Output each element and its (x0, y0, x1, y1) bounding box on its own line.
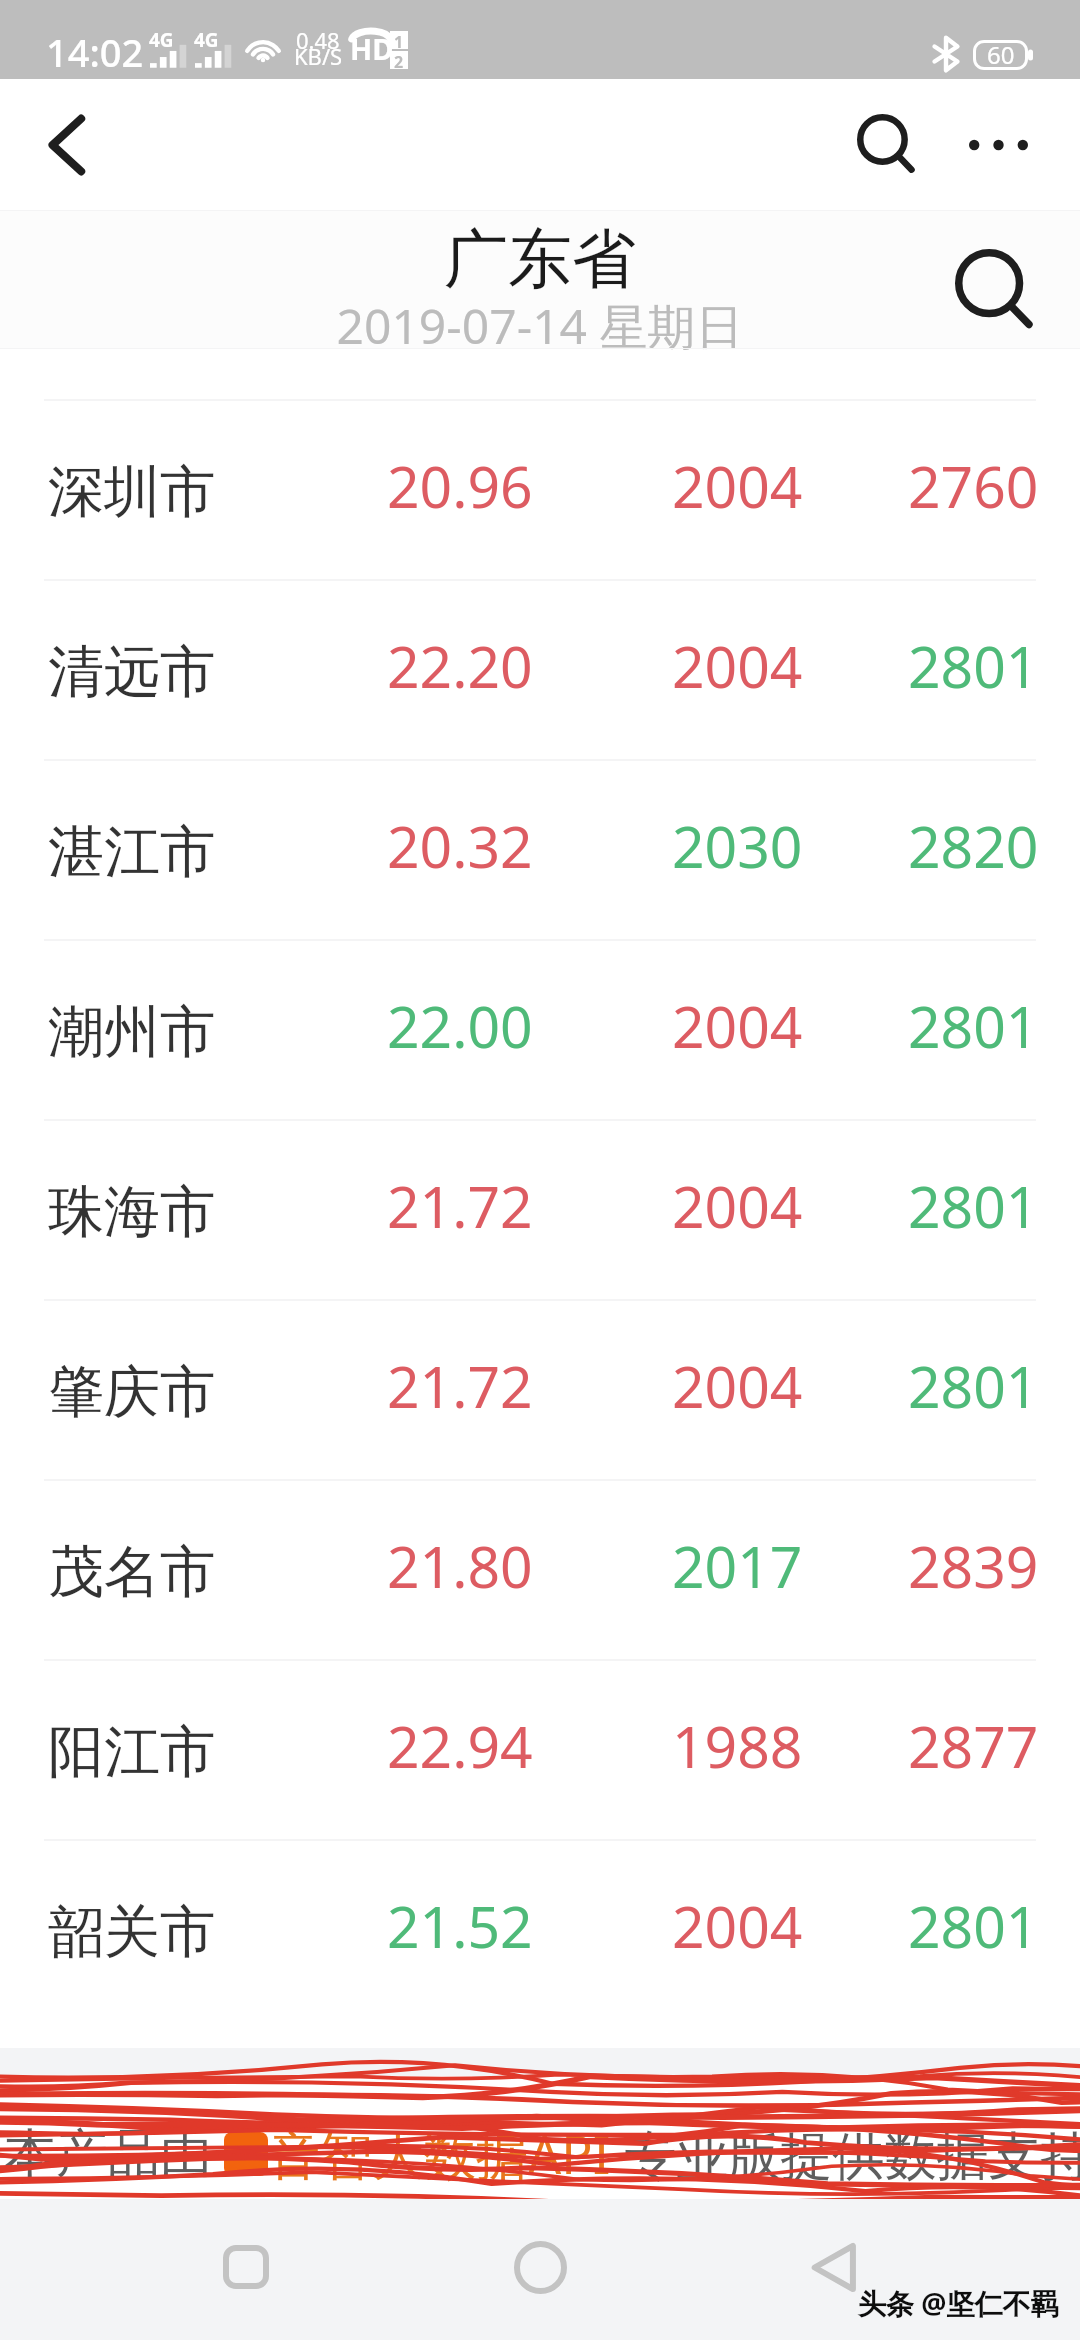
button[interactable]: 潮州市 (0, 939, 1080, 1119)
button[interactable]: 阳江市 (0, 1659, 1080, 1839)
staticText: 珠海市 (48, 1177, 216, 1248)
button[interactable]: 茂名市 (0, 1479, 1080, 1659)
staticText: 2877 (908, 1707, 1039, 1785)
staticText: 1988 (672, 1707, 803, 1785)
staticText: 2801 (908, 1167, 1039, 1245)
staticText: 14:02 (46, 26, 144, 78)
staticText: 韶关市 (48, 1897, 216, 1968)
staticText: 2839 (908, 1527, 1039, 1605)
button[interactable]: 韶关市 (0, 1839, 1080, 2019)
button[interactable]: Search (837, 94, 935, 192)
staticText: 头条 @坚仁不羁 (858, 2284, 1059, 2322)
staticText: 21.52 (387, 1887, 533, 1965)
staticText: 2820 (908, 807, 1039, 885)
staticText: 1 (394, 31, 404, 49)
staticText: 清远市 (48, 637, 216, 708)
staticText: 60 (987, 38, 1015, 71)
staticText: 2004 (672, 447, 803, 525)
staticText: 茂名市 (48, 1537, 216, 1608)
staticText: 21.80 (387, 1527, 533, 1605)
staticText: 4G (194, 27, 219, 53)
staticText: 2760 (908, 447, 1039, 525)
button[interactable]: 清远市 (0, 579, 1080, 759)
staticText: 0.48 (296, 25, 340, 55)
button[interactable]: 湛江市 (0, 759, 1080, 939)
staticText: 阳江市 (48, 1717, 216, 1788)
button[interactable]: More options (948, 95, 1048, 195)
button[interactable]: 肇庆市 (0, 1299, 1080, 1479)
staticText: 2019-07-14 星期日 (336, 293, 744, 359)
staticText: 音智大数据API (268, 2118, 611, 2189)
button[interactable]: Back (779, 2212, 889, 2322)
button[interactable]: Search city (944, 238, 1044, 338)
staticText: 2801 (908, 627, 1039, 705)
staticText: 深圳市 (48, 457, 216, 528)
staticText: 2004 (672, 1887, 803, 1965)
staticText: 2030 (672, 807, 803, 885)
staticText: 20.96 (387, 447, 533, 525)
staticText: HD (350, 29, 392, 68)
staticText: 22.20 (387, 627, 533, 705)
button[interactable]: Recent apps (191, 2212, 301, 2322)
staticText: 22.94 (387, 1707, 533, 1785)
staticText: KB/S (294, 41, 341, 71)
staticText: 2004 (672, 1167, 803, 1245)
staticText: 4G (149, 27, 174, 53)
staticText: 广东省 (444, 219, 636, 300)
staticText: 肇庆市 (48, 1357, 216, 1428)
staticText: 20.32 (387, 807, 533, 885)
staticText: 2004 (672, 987, 803, 1065)
staticText: 2801 (908, 1887, 1039, 1965)
staticText: 2801 (908, 1347, 1039, 1425)
staticText: 2004 (672, 627, 803, 705)
button[interactable]: Home (485, 2212, 595, 2322)
button[interactable]: 珠海市 (0, 1119, 1080, 1299)
staticText: 专业版提供数据支持 (611, 2118, 1080, 2189)
button[interactable]: 深圳市 (0, 399, 1080, 579)
staticText: 22.00 (387, 987, 533, 1065)
staticText: 21.72 (387, 1347, 533, 1425)
staticText: 2017 (672, 1527, 803, 1605)
staticText: 潮州市 (48, 997, 216, 1068)
staticText: 2004 (672, 1347, 803, 1425)
staticText: 本产品由 (4, 2121, 212, 2187)
staticText: 2801 (908, 987, 1039, 1065)
staticText: 2 (394, 51, 404, 69)
staticText: 湛江市 (48, 817, 216, 888)
staticText: 21.72 (387, 1167, 533, 1245)
button[interactable]: Back (20, 99, 112, 191)
